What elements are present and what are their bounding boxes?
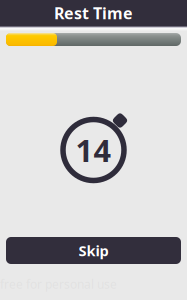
staticText: Skip xyxy=(78,241,108,260)
button[interactable]: Skip xyxy=(6,237,181,264)
staticText: Rest Time xyxy=(54,2,133,24)
staticText: 14 xyxy=(75,130,111,170)
